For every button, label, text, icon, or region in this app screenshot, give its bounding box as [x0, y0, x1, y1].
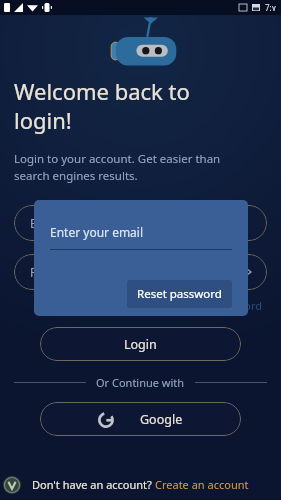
staticText: Password	[30, 264, 85, 280]
staticText: Welcome back to login!	[14, 76, 190, 135]
button[interactable]: Password	[14, 254, 267, 290]
staticText: Login to your account. Get easier than s…	[14, 151, 221, 183]
staticText: Or Continue with	[96, 375, 185, 390]
button[interactable]: Reset password	[127, 280, 232, 308]
staticText: Don't have an account?	[32, 477, 155, 492]
staticText: Reset password	[137, 286, 222, 302]
staticText: Google	[140, 411, 183, 428]
button[interactable]: Google	[40, 402, 241, 436]
button[interactable]: Create an account	[155, 477, 249, 492]
button[interactable]: Email	[14, 205, 267, 241]
staticText: Enter your email	[50, 224, 144, 240]
button[interactable]: Reset Password	[177, 294, 267, 317]
button[interactable]: Login	[40, 327, 241, 361]
staticText: Email	[30, 215, 61, 231]
staticText: Login	[124, 336, 157, 353]
other: Show password	[237, 265, 251, 279]
staticText: 7:٧	[265, 2, 277, 13]
